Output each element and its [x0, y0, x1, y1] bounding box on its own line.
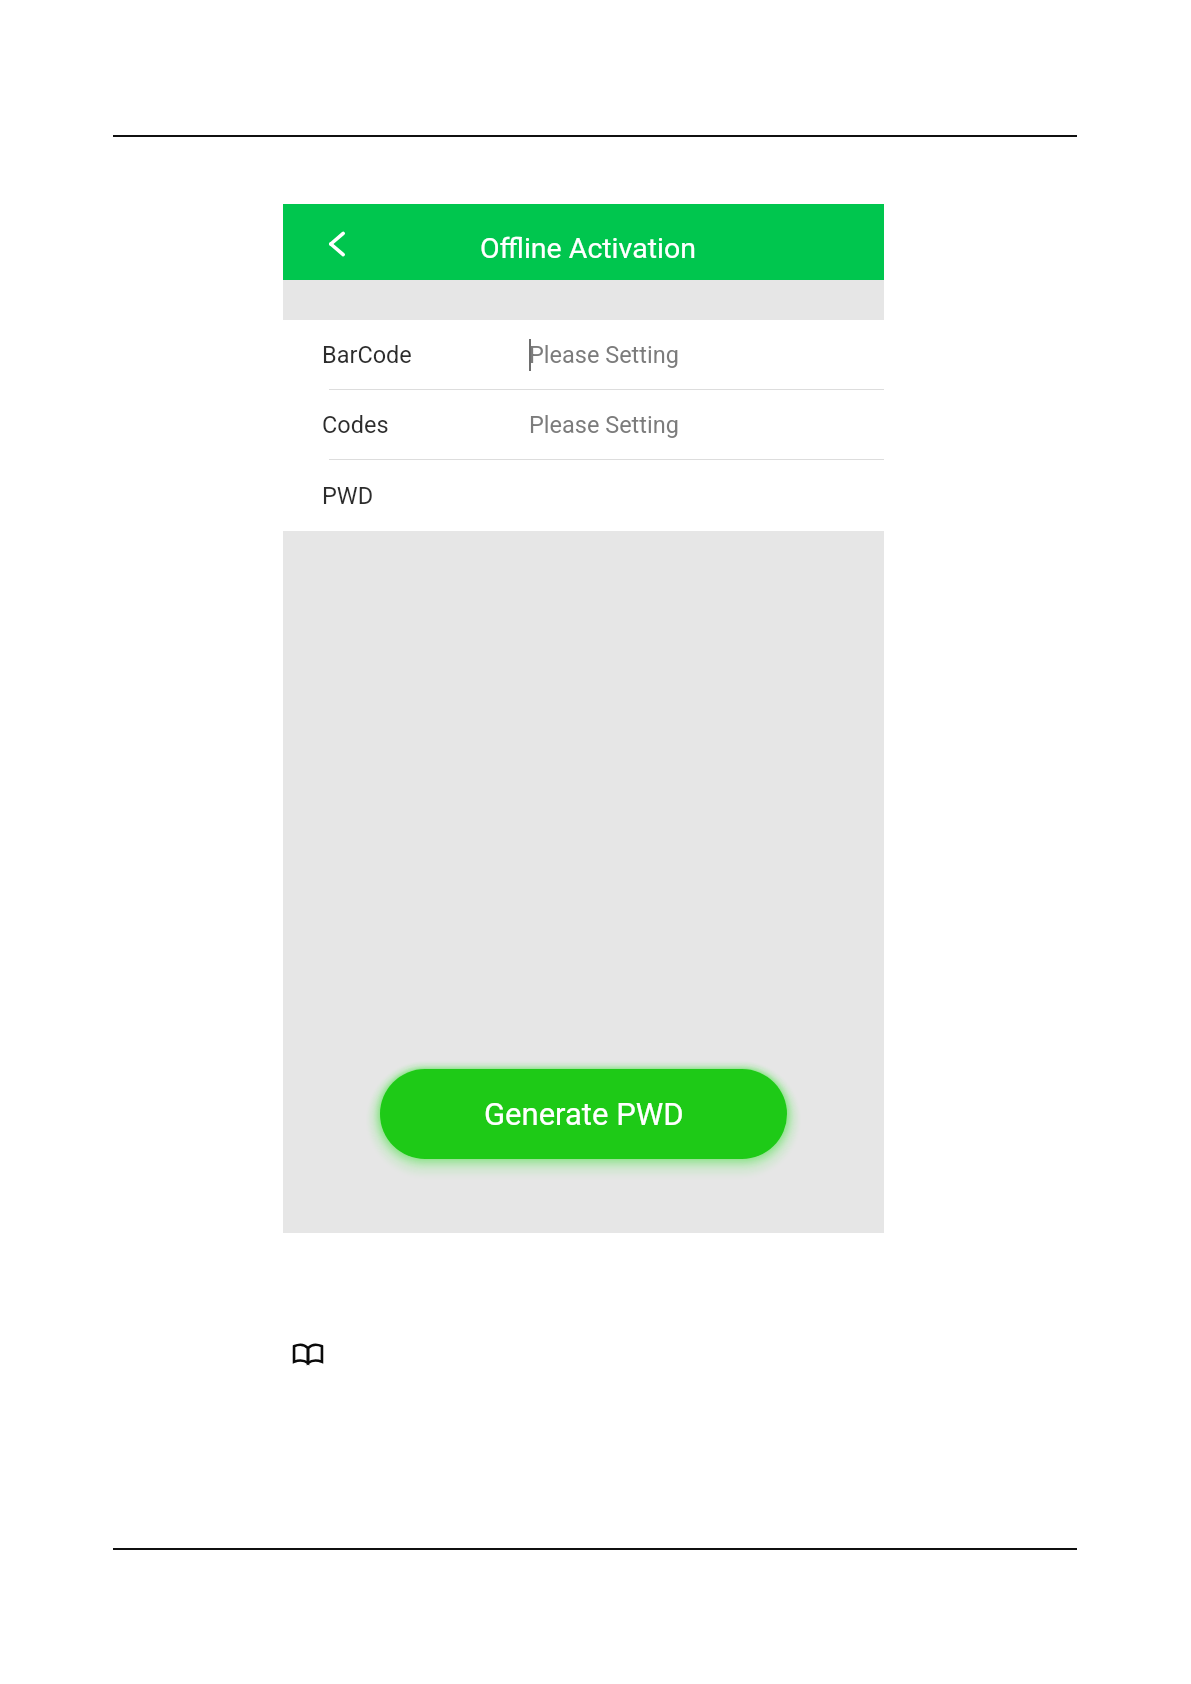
button[interactable]: PWD: [283, 460, 884, 531]
button[interactable]: Codes: [283, 390, 884, 459]
button[interactable]: BarCode: [283, 320, 884, 389]
staticText: Codes: [322, 411, 389, 439]
staticText: Please Setting: [529, 411, 679, 439]
staticText: PWD: [322, 482, 374, 510]
staticText: Offline Activation: [480, 232, 696, 265]
button[interactable]: Generate PWD: [380, 1069, 787, 1159]
button[interactable]: Back: [315, 220, 359, 264]
staticText: BarCode: [322, 341, 412, 369]
staticText: Generate PWD: [484, 1096, 684, 1132]
staticText: Please Setting: [529, 341, 679, 369]
